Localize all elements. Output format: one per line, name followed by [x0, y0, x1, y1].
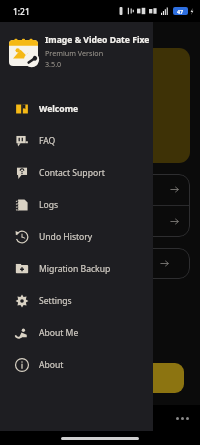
button[interactable]: Select folders to scan [14, 174, 190, 205]
staticText: Settings [39, 295, 72, 307]
button[interactable]: Start Correction… [14, 363, 184, 393]
button[interactable]: Review changes [14, 248, 190, 279]
staticText: 3.5.0 [45, 59, 62, 69]
button[interactable]: Logs [0, 189, 153, 221]
staticText: Undo History [39, 231, 93, 243]
staticText: 47 [177, 8, 184, 15]
button[interactable]: About [0, 349, 153, 381]
staticText: About Me [39, 327, 79, 339]
staticText: so your gallery sorts them in [25, 107, 135, 118]
button[interactable]: Contact Support [0, 157, 153, 189]
staticText: Migration Backup [39, 263, 111, 275]
button[interactable]: Welcome [0, 93, 153, 125]
staticText: About [39, 359, 64, 371]
staticText: Review changes [25, 258, 87, 269]
staticText: Premium Version [45, 48, 104, 58]
staticText: Contact Support [39, 167, 105, 179]
staticText: Welcome [39, 103, 79, 115]
button[interactable]: Undo History [0, 221, 153, 253]
staticText: Image & Video Date Fixer [45, 34, 149, 46]
button[interactable]: Image & Video Date Fixer [0, 22, 153, 79]
staticText: Logs [39, 199, 59, 211]
button[interactable]: Migration Backup [0, 253, 153, 285]
button[interactable]: Settings [0, 285, 153, 317]
staticText: FAQ [39, 135, 56, 147]
button[interactable]: Fix photo and video date data [14, 48, 190, 163]
button[interactable]: About Me [0, 317, 153, 349]
button[interactable]: FAQ [0, 125, 153, 157]
button[interactable]: Choose date source [14, 206, 190, 237]
staticText: 1:21 [13, 6, 30, 17]
button[interactable]: More options [173, 414, 192, 423]
